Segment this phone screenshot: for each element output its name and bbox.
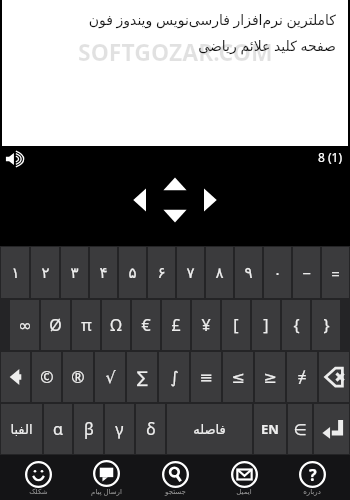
button[interactable]: ≤ xyxy=(223,352,253,402)
button[interactable]: ® xyxy=(63,352,93,402)
button[interactable]: ۲ xyxy=(31,247,59,298)
staticText: [ xyxy=(233,314,239,336)
staticText: = xyxy=(331,263,340,283)
button[interactable]: ¥ xyxy=(192,300,220,350)
button[interactable]: ∫ xyxy=(159,352,189,402)
staticText: ? xyxy=(309,464,317,486)
button[interactable]: EN xyxy=(254,404,286,454)
button[interactable]: Send message xyxy=(75,458,137,497)
button[interactable]: ۷ xyxy=(177,247,204,298)
button[interactable]: δ xyxy=(136,404,165,454)
staticText: Ω xyxy=(110,314,122,336)
staticText: ∈ xyxy=(293,421,307,438)
button[interactable]: £ xyxy=(162,300,190,350)
staticText: SOFTGOZAR.COM xyxy=(78,36,273,67)
button[interactable]: ∑ xyxy=(127,352,157,402)
button[interactable]: Emoticons xyxy=(7,459,69,496)
staticText: − xyxy=(302,263,311,283)
staticText: Ø xyxy=(49,314,62,336)
staticText: ۲ xyxy=(41,264,50,281)
staticText: ] xyxy=(263,314,269,336)
button[interactable]: ۹ xyxy=(235,247,262,298)
staticText: ≠ xyxy=(297,366,307,388)
staticText: فاصله xyxy=(193,422,226,437)
button[interactable]: Ω xyxy=(102,300,130,350)
button[interactable]: Directional pad xyxy=(119,171,231,229)
staticText: ۴ xyxy=(99,264,108,281)
button[interactable]: Previous xyxy=(1,352,30,402)
staticText: EN xyxy=(261,420,279,438)
button[interactable]: About xyxy=(281,459,343,496)
staticText: ایمیل xyxy=(236,488,252,496)
staticText: 8 (1) xyxy=(318,149,343,165)
staticText: ۷ xyxy=(186,264,195,281)
staticText: ارسال پیام xyxy=(91,487,122,497)
button[interactable]: ۶ xyxy=(148,247,175,298)
staticText: β xyxy=(84,418,94,440)
staticText: √ xyxy=(105,368,116,387)
staticText: جستجو xyxy=(165,488,186,496)
button[interactable]: } xyxy=(312,300,340,350)
button[interactable]: ۴ xyxy=(90,247,117,298)
button[interactable]: α xyxy=(44,404,72,454)
staticText: } xyxy=(323,314,330,336)
staticText: ۶ xyxy=(157,264,166,281)
button[interactable]: π xyxy=(72,300,100,350)
button[interactable]: ≡ xyxy=(191,352,221,402)
button[interactable]: Email xyxy=(213,459,275,496)
staticText: ۹ xyxy=(244,264,253,281)
button[interactable]: ≥ xyxy=(255,352,285,402)
staticText: ¥ xyxy=(201,314,211,336)
button[interactable]: © xyxy=(32,352,61,402)
staticText: ۰ xyxy=(273,264,282,281)
button[interactable]: ≠ xyxy=(287,352,317,402)
button[interactable]: √ xyxy=(95,352,125,402)
button[interactable]: Ø xyxy=(41,300,70,350)
staticText: ® xyxy=(71,366,85,388)
button[interactable]: − xyxy=(293,247,320,298)
button[interactable]: [ xyxy=(222,300,250,350)
button[interactable]: γ xyxy=(105,404,134,454)
staticText: ≤ xyxy=(231,368,245,387)
button[interactable]: Enter xyxy=(314,404,349,454)
staticText: ≡ xyxy=(199,368,213,387)
button[interactable]: Sound xyxy=(4,150,36,168)
staticText: { xyxy=(293,314,300,336)
staticText: ۳ xyxy=(70,264,79,281)
button[interactable]: β xyxy=(74,404,103,454)
staticText: ۵ xyxy=(128,264,137,281)
button[interactable]: = xyxy=(322,247,349,298)
staticText: δ xyxy=(146,418,156,440)
button[interactable]: ∈ xyxy=(288,404,312,454)
button[interactable]: € xyxy=(132,300,160,350)
staticText: ۱ xyxy=(11,264,20,281)
staticText: ∫ xyxy=(170,368,179,387)
staticText: درباره xyxy=(303,488,321,496)
button[interactable]: الفبا xyxy=(1,404,42,454)
button[interactable]: فاصله xyxy=(167,404,252,454)
staticText: صفحه کلید علائم ریاضی xyxy=(198,36,336,55)
button[interactable]: ∞ xyxy=(10,300,39,350)
staticText: © xyxy=(40,366,54,388)
staticText: £ xyxy=(171,314,181,336)
staticText: α xyxy=(53,418,63,440)
button[interactable]: ۳ xyxy=(61,247,88,298)
button[interactable]: ۱ xyxy=(1,247,29,298)
staticText: γ xyxy=(115,418,124,440)
staticText: شکلک xyxy=(29,488,48,496)
button[interactable]: Backspace xyxy=(319,352,349,402)
staticText: ≥ xyxy=(263,368,277,387)
staticText: π xyxy=(81,314,92,336)
button[interactable]: ] xyxy=(252,300,280,350)
button[interactable]: Search xyxy=(144,459,206,496)
button[interactable]: ۵ xyxy=(119,247,146,298)
staticText: الفبا xyxy=(10,422,33,437)
staticText: ∑ xyxy=(137,368,148,387)
staticText: کاملترین نرم‌افزار فارسی‌نویس ویندوز فون xyxy=(88,10,336,29)
button[interactable]: ۸ xyxy=(206,247,233,298)
staticText: ۸ xyxy=(215,264,224,281)
staticText: € xyxy=(141,314,151,336)
staticText: ∞ xyxy=(18,316,32,335)
button[interactable]: { xyxy=(282,300,310,350)
button[interactable]: ۰ xyxy=(264,247,291,298)
